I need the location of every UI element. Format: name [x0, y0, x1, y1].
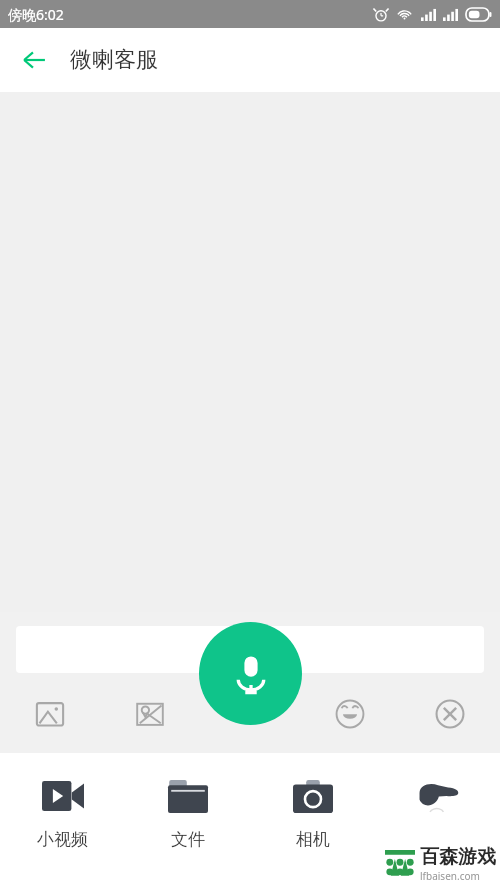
staticText: 文件 — [171, 829, 205, 850]
staticText: lfbaisen.com — [420, 869, 480, 883]
button[interactable] — [375, 753, 500, 889]
staticText: 相机 — [296, 829, 330, 850]
button[interactable]: Location — [100, 688, 200, 740]
button[interactable]: 相机 — [250, 753, 375, 889]
button[interactable]: 文件 — [125, 753, 250, 889]
button[interactable]: Voice record — [199, 622, 302, 725]
button[interactable]: Photo — [0, 688, 100, 740]
staticText: 傍晚6:02 — [8, 5, 64, 24]
staticText: 微喇客服 — [70, 46, 158, 74]
button[interactable]: Back — [10, 36, 58, 84]
button[interactable] — [16, 626, 484, 673]
button[interactable]: 小视频 — [0, 753, 125, 889]
button[interactable]: Close — [400, 688, 500, 740]
staticText: 百森游戏 — [420, 845, 496, 869]
staticText: 小视频 — [37, 829, 88, 850]
button[interactable]: Emoji — [300, 688, 400, 740]
